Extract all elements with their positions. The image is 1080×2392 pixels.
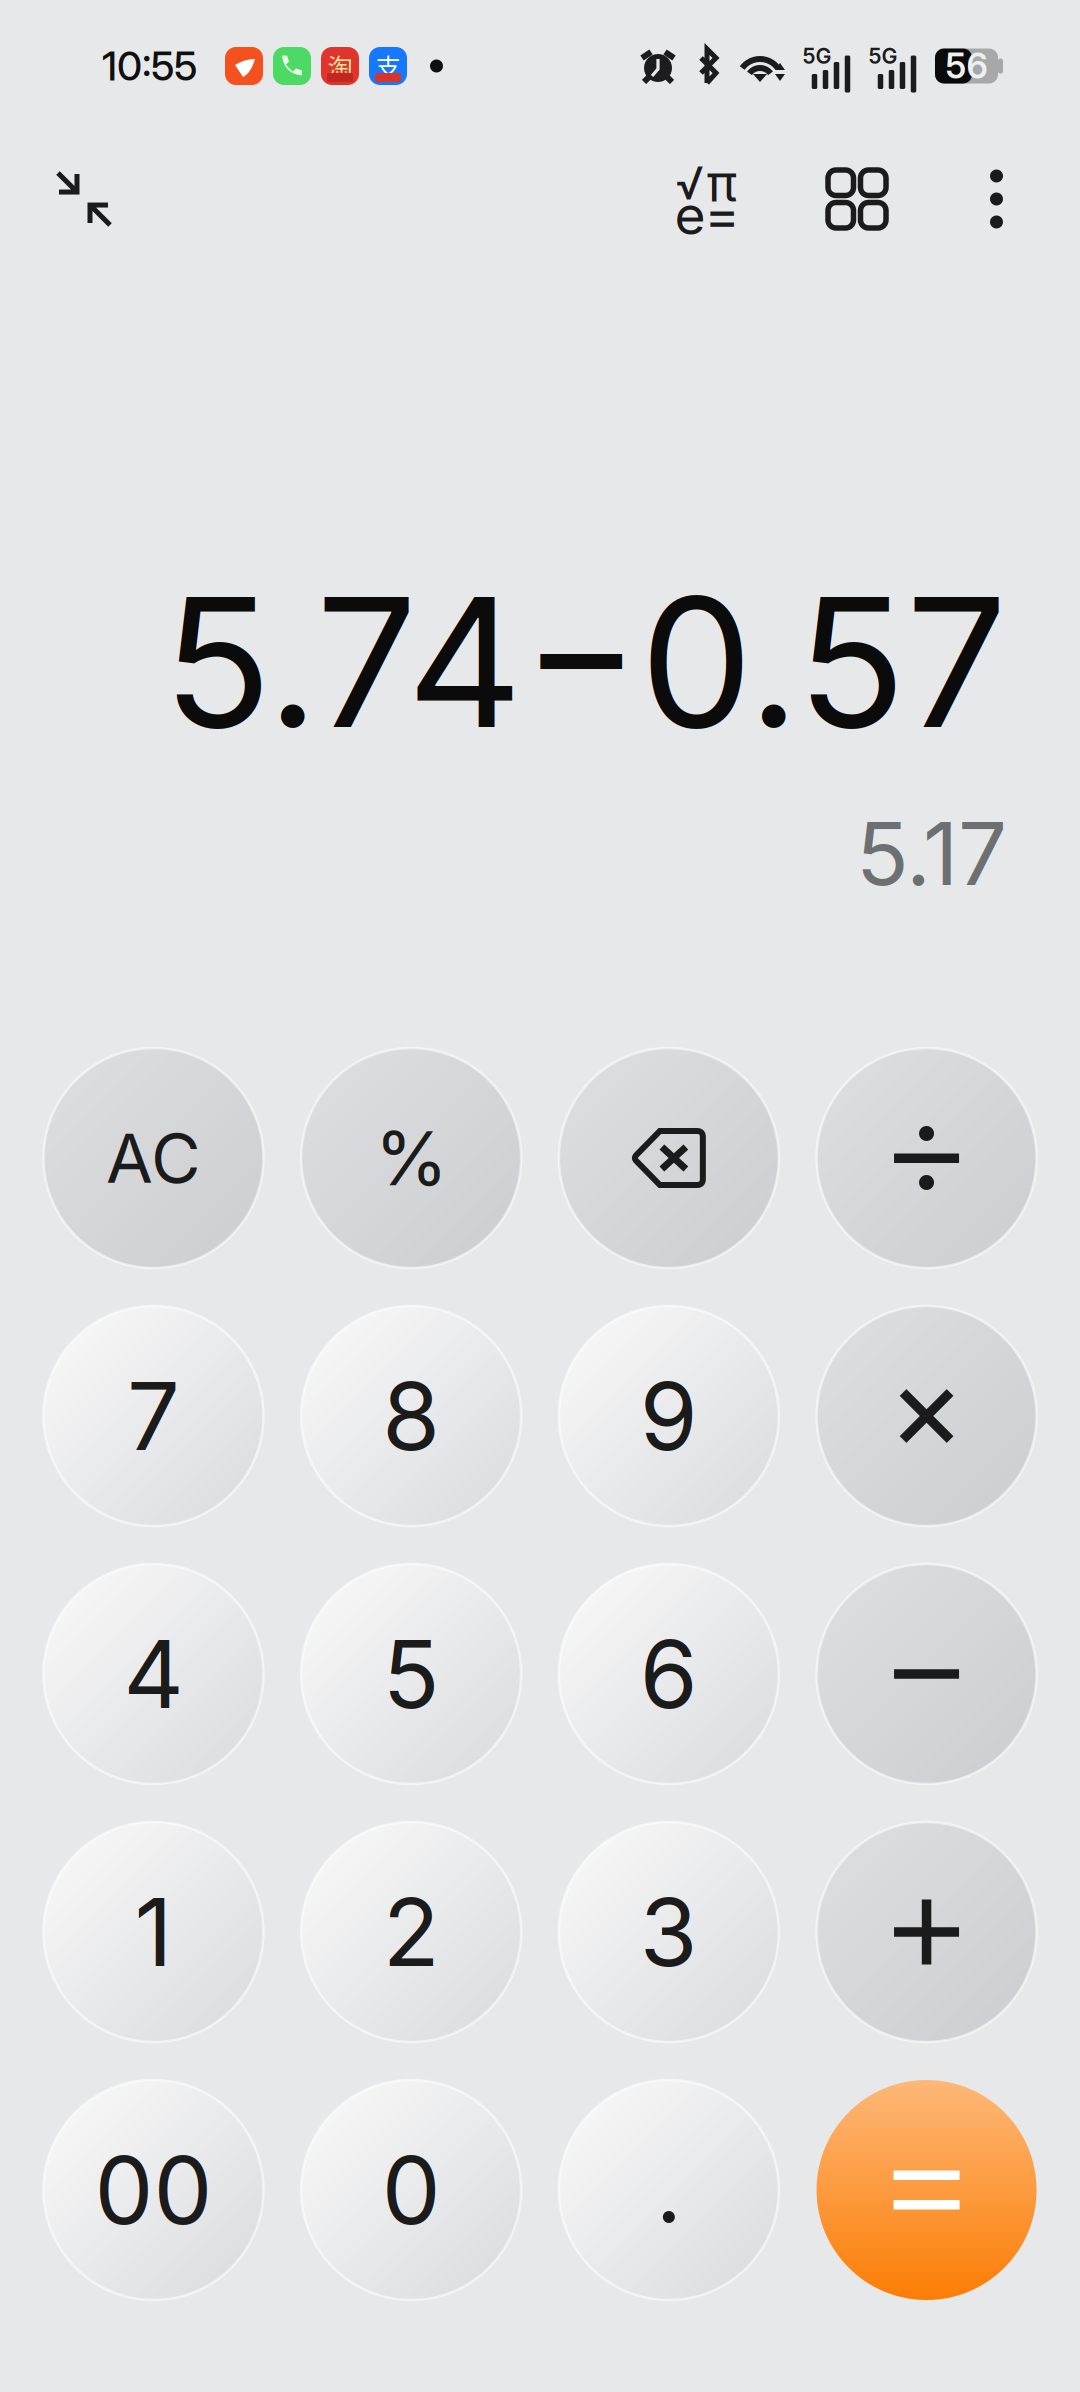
- staticText: 5.74−0.57: [163, 554, 1007, 770]
- button[interactable]: Collapse: [28, 143, 140, 255]
- staticText: 淘: [327, 48, 352, 84]
- staticText: e: [674, 183, 705, 247]
- staticText: π: [706, 152, 737, 214]
- staticText: 5G: [802, 43, 831, 69]
- staticText: 10:55: [102, 42, 197, 90]
- button[interactable]: 2: [301, 1822, 521, 2042]
- staticText: 00: [94, 2133, 212, 2246]
- staticText: 5: [383, 1617, 440, 1730]
- button[interactable]: 3: [559, 1822, 779, 2042]
- button[interactable]: 1: [43, 1822, 263, 2042]
- button[interactable]: 8: [301, 1306, 521, 1526]
- staticText: 9: [640, 1359, 698, 1472]
- button[interactable]: 9: [559, 1306, 779, 1526]
- button[interactable]: %: [301, 1048, 521, 1268]
- button[interactable]: 7: [43, 1306, 263, 1526]
- staticText: √: [675, 156, 704, 210]
- button[interactable]: 5: [301, 1564, 521, 1784]
- button[interactable]: 00: [43, 2080, 263, 2300]
- button[interactable]: [816, 1048, 1036, 1268]
- button[interactable]: [816, 1306, 1036, 1526]
- button[interactable]: [816, 1564, 1036, 1784]
- staticText: 7: [127, 1359, 180, 1472]
- staticText: 3: [640, 1875, 698, 1988]
- staticText: 5.17: [856, 801, 1007, 906]
- staticText: AC: [106, 1117, 201, 1199]
- staticText: 6: [640, 1617, 698, 1730]
- staticText: 56: [945, 45, 987, 87]
- staticText: 4: [123, 1617, 183, 1730]
- button[interactable]: Unit converter: [801, 143, 913, 255]
- button[interactable]: [816, 1822, 1036, 2042]
- button[interactable]: 4: [43, 1564, 263, 1784]
- staticText: 支: [375, 48, 400, 84]
- staticText: %: [375, 1113, 448, 1203]
- staticText: 2: [383, 1875, 440, 1988]
- button[interactable]: [816, 2080, 1036, 2300]
- staticText: 0: [382, 2133, 441, 2246]
- button[interactable]: 6: [559, 1564, 779, 1784]
- button[interactable]: 0: [301, 2080, 521, 2300]
- staticText: 8: [382, 1359, 440, 1472]
- button[interactable]: [559, 2080, 779, 2300]
- staticText: 1: [134, 1875, 172, 1988]
- button[interactable]: AC: [43, 1048, 263, 1268]
- staticText: =: [704, 183, 739, 247]
- button[interactable]: More options: [954, 143, 1039, 255]
- button[interactable]: Scientific calculator: [650, 143, 762, 255]
- staticText: 5G: [868, 43, 897, 69]
- button[interactable]: [559, 1048, 779, 1268]
